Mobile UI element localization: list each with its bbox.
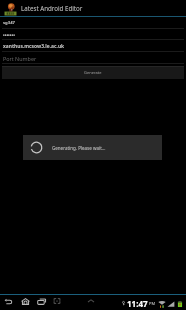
button[interactable]: Show notifications bbox=[85, 295, 97, 307]
button[interactable]: Back bbox=[2, 295, 14, 307]
button[interactable]: Latest Android Editor bbox=[0, 0, 186, 16]
button[interactable]: Recent apps bbox=[35, 295, 47, 307]
staticText: PM bbox=[149, 301, 156, 306]
button[interactable]: sg347 bbox=[0, 18, 186, 29]
button[interactable]: Home bbox=[19, 295, 31, 307]
button[interactable]: Port Number bbox=[0, 53, 186, 64]
staticText: ••••••• bbox=[3, 32, 15, 38]
staticText: Generate bbox=[84, 70, 102, 75]
staticText: 11:47 bbox=[127, 298, 148, 309]
staticText: Latest Android Editor bbox=[21, 4, 83, 12]
button[interactable]: Generate bbox=[2, 66, 184, 79]
staticText: Generating. Please wait... bbox=[52, 145, 106, 151]
staticText: Port Number bbox=[3, 55, 37, 62]
button[interactable]: xanthus.mcsow3.le.ac.uk bbox=[0, 41, 186, 52]
button[interactable]: Screenshot bbox=[51, 295, 63, 307]
staticText: sg347 bbox=[3, 20, 15, 26]
button[interactable]: ••••••• bbox=[0, 30, 186, 40]
staticText: xanthus.mcsow3.le.ac.uk bbox=[3, 43, 65, 50]
